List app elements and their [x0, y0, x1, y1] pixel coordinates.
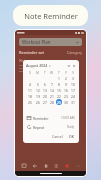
staticText: 7 [51, 82, 53, 86]
staticText: 8 [58, 82, 60, 86]
button[interactable]: 19 [35, 93, 41, 99]
staticText: Cancel [52, 134, 63, 139]
staticText: Note Reminder [24, 11, 78, 21]
button[interactable]: List [51, 161, 60, 170]
button[interactable]: Reminder [26, 114, 76, 122]
button[interactable]: 8 [56, 81, 62, 87]
button[interactable]: 10 [70, 81, 76, 87]
staticText: 21 [50, 94, 54, 98]
button[interactable]: 9 [63, 81, 69, 87]
button[interactable]: Note Reminder [13, 5, 88, 26]
staticText: 2 [65, 76, 67, 80]
staticText: 31 [71, 100, 75, 104]
staticText: S [29, 71, 31, 75]
staticText: 19 [36, 94, 40, 98]
staticText: 1 [58, 76, 60, 80]
button[interactable]: Cancel [50, 133, 65, 140]
button[interactable]: 30 [63, 99, 69, 105]
staticText: 20 [43, 94, 47, 98]
staticText: Workout Plan [22, 39, 51, 45]
button[interactable]: 22 [56, 93, 62, 99]
staticText: 16 [64, 88, 68, 92]
button[interactable]: Undo [30, 161, 39, 170]
staticText: Reminder [33, 116, 49, 121]
staticText: 17 [71, 88, 75, 92]
staticText: 6 [44, 82, 46, 86]
button[interactable]: 18 [27, 93, 33, 99]
button[interactable]: 27 [42, 99, 48, 105]
staticText: Notes [19, 58, 29, 63]
button[interactable]: 21 [49, 93, 55, 99]
button[interactable]: 17 [70, 87, 76, 93]
staticText: F [65, 71, 67, 75]
staticText: T [44, 71, 46, 75]
button[interactable]: 15 [56, 87, 62, 93]
button[interactable]: 23 [63, 93, 69, 99]
button[interactable]: 3 [70, 75, 76, 81]
button[interactable]: Record [62, 161, 71, 170]
staticText: 25 [28, 100, 32, 104]
button[interactable]: 31 [70, 99, 76, 105]
staticText: 29 [57, 100, 61, 104]
button[interactable]: Next month [71, 63, 76, 68]
staticText: 28 [50, 100, 54, 104]
staticText: Daily [67, 125, 75, 129]
button[interactable]: 29 [56, 99, 62, 105]
staticText: 18 [28, 94, 32, 98]
button[interactable]: 26 [35, 99, 41, 105]
button[interactable]: Repeat [26, 123, 76, 131]
staticText: 4 [29, 82, 31, 86]
staticText: August 2024 [26, 63, 48, 68]
staticText: 3 [72, 76, 74, 80]
button[interactable]: 28 [49, 99, 55, 105]
staticText: 10:00 AM [61, 116, 75, 120]
staticText: OK [69, 134, 74, 139]
staticText: 22 [57, 94, 61, 98]
staticText: 5 [37, 82, 39, 86]
staticText: 13 [43, 88, 47, 92]
staticText: 14 [50, 88, 54, 92]
button[interactable]: 16 [63, 87, 69, 93]
button[interactable]: 24 [70, 93, 76, 99]
staticText: 23 [64, 94, 68, 98]
button[interactable]: Workout Plan [19, 38, 82, 46]
staticText: M [36, 71, 39, 75]
button[interactable]: 13 [42, 87, 48, 93]
staticText: Category [67, 50, 82, 55]
button[interactable]: 5 [35, 81, 41, 87]
staticText: 11 [28, 88, 32, 92]
button[interactable]: 6 [42, 81, 48, 87]
button[interactable]: 4 [27, 81, 33, 87]
staticText: 27 [43, 100, 47, 104]
staticText: 12 [36, 88, 40, 92]
staticText: W [50, 71, 53, 75]
staticText: 24 [71, 94, 75, 98]
staticText: 10 [71, 82, 75, 86]
staticText: Reminder set [19, 50, 45, 55]
staticText: 9 [65, 82, 67, 86]
button[interactable]: 25 [27, 99, 33, 105]
button[interactable]: 11 [27, 87, 33, 93]
staticText: T [58, 71, 60, 75]
staticText: 26 [36, 100, 40, 104]
staticText: 30 [64, 100, 68, 104]
button[interactable]: August 2024 [26, 63, 51, 68]
button[interactable]: More [73, 161, 82, 170]
button[interactable]: 20 [42, 93, 48, 99]
staticText: 15 [57, 88, 61, 92]
button[interactable]: 12 [35, 87, 41, 93]
button[interactable]: Previous month [66, 63, 71, 68]
button[interactable]: Image [19, 161, 28, 170]
staticText: S [72, 71, 74, 75]
button[interactable]: 7 [49, 81, 55, 87]
button[interactable]: Bold [41, 161, 50, 170]
button[interactable]: 2 [63, 75, 69, 81]
staticText: Repeat [33, 125, 45, 130]
button[interactable]: 14 [49, 87, 55, 93]
button[interactable]: 1 [56, 75, 62, 81]
button[interactable]: OK [67, 133, 76, 140]
